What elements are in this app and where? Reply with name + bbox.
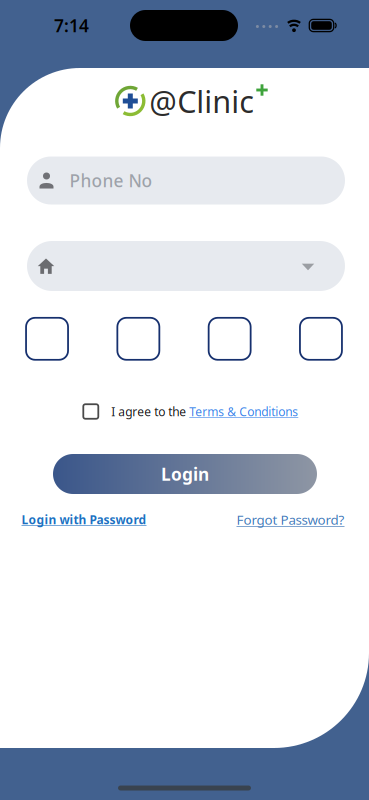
button[interactable]: Terms & Conditions [189, 403, 298, 419]
staticText: 7:14 [54, 14, 89, 37]
staticText: Login with Password [21, 511, 146, 527]
button[interactable]: OTP digit 4 [300, 318, 342, 360]
staticText: Terms & Conditions [189, 403, 298, 419]
button[interactable]: OTP digit 2 [117, 318, 159, 360]
staticText: Login [161, 462, 209, 485]
button[interactable]: Phone No [27, 156, 345, 204]
button[interactable]: OTP digit 3 [209, 318, 251, 360]
staticText: I agree to the [111, 403, 186, 419]
button[interactable]: Forgot Password? [236, 511, 344, 528]
staticText: @Clinic [149, 81, 254, 121]
button[interactable]: Select clinic [27, 241, 345, 291]
button[interactable]: Login [53, 454, 317, 494]
staticText: Forgot Password? [236, 511, 344, 528]
staticText: Phone No [69, 169, 152, 192]
button[interactable]: I agree to the Terms & Conditions [83, 404, 98, 419]
button[interactable]: OTP digit 1 [26, 318, 68, 360]
button[interactable]: Login with Password [21, 511, 146, 527]
